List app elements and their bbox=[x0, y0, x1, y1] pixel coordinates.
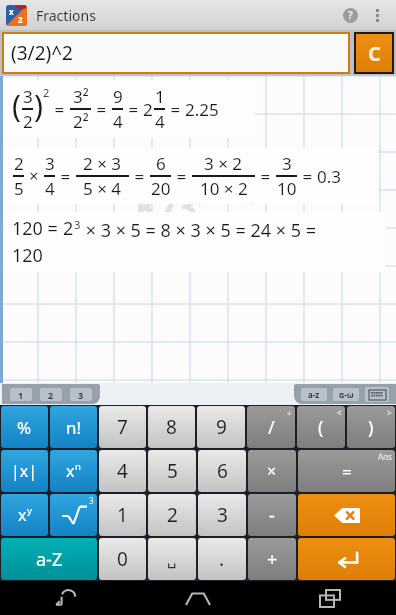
staticText: × bbox=[267, 460, 277, 482]
staticText: 2 bbox=[48, 389, 54, 401]
staticText: 4 bbox=[117, 458, 128, 484]
staticText: n! bbox=[66, 416, 82, 439]
button[interactable]: back bbox=[298, 494, 395, 536]
staticText: 0 bbox=[117, 546, 128, 572]
staticText: x bbox=[18, 504, 27, 526]
button[interactable]: 2 bbox=[4, 148, 378, 204]
button[interactable]: Hide keyboard bbox=[365, 387, 389, 402]
button[interactable]: ) bbox=[347, 406, 395, 448]
staticText: 3 bbox=[78, 389, 84, 401]
staticText: 3 bbox=[89, 495, 94, 506]
button[interactable]: 4 bbox=[99, 450, 146, 492]
button[interactable]: n! bbox=[50, 406, 97, 448]
staticText: 2 bbox=[143, 98, 153, 121]
staticText: 3² bbox=[73, 85, 89, 108]
staticText: 0.3 bbox=[317, 165, 342, 188]
button[interactable]: ( bbox=[297, 406, 345, 448]
button[interactable]: ( bbox=[4, 80, 255, 138]
staticText: 3 bbox=[45, 152, 55, 175]
button[interactable]: Recent apps bbox=[264, 581, 396, 615]
staticText: 3 bbox=[282, 152, 292, 175]
button[interactable]: |x| bbox=[1, 450, 48, 492]
staticText: |x| bbox=[11, 460, 38, 482]
button[interactable]: α-ω bbox=[333, 388, 359, 401]
staticText: a-Z bbox=[36, 547, 63, 572]
staticText: × 3 × 5 = 8 × 3 × 5 = 24 × 5 = bbox=[81, 218, 316, 243]
button[interactable]: 3 bbox=[70, 388, 92, 401]
staticText: 3 bbox=[23, 85, 33, 108]
staticText: % bbox=[17, 416, 32, 439]
button[interactable]: 2 bbox=[40, 388, 62, 401]
button[interactable]: 120 = bbox=[4, 212, 386, 272]
staticText: ␣ bbox=[167, 551, 177, 568]
staticText: 2.25 bbox=[185, 98, 219, 121]
staticText: 2 × 3 bbox=[83, 152, 122, 175]
button[interactable]: × bbox=[248, 450, 296, 492]
staticText: .com bbox=[197, 207, 233, 227]
button[interactable]: - bbox=[248, 494, 296, 536]
button[interactable]: 5 bbox=[148, 450, 196, 492]
staticText: = bbox=[124, 98, 143, 121]
staticText: = bbox=[342, 460, 352, 483]
staticText: 5 bbox=[14, 177, 24, 200]
button[interactable]: Home bbox=[132, 581, 264, 615]
staticText: = bbox=[256, 165, 275, 188]
staticText: ÷ bbox=[287, 407, 292, 418]
button[interactable]: a-z bbox=[301, 388, 327, 401]
button[interactable]: 3 bbox=[198, 494, 246, 536]
button[interactable]: enter bbox=[298, 538, 395, 580]
staticText: 2² bbox=[73, 110, 89, 133]
button[interactable]: Back bbox=[0, 581, 132, 615]
staticText: 5 bbox=[167, 458, 178, 484]
staticText: 6 bbox=[217, 458, 228, 484]
button[interactable]: a-Z bbox=[1, 538, 97, 580]
staticText: 4 bbox=[45, 177, 55, 200]
staticText: 9 bbox=[113, 85, 123, 108]
button[interactable]: 1 bbox=[99, 494, 146, 536]
staticText: = bbox=[56, 165, 75, 188]
staticText: 1 bbox=[18, 389, 24, 401]
button[interactable]: x bbox=[1, 494, 48, 536]
staticText: = bbox=[130, 165, 149, 188]
staticText: 2 bbox=[43, 85, 50, 100]
staticText: 4 bbox=[155, 110, 165, 133]
staticText: K73 bbox=[135, 184, 197, 230]
button[interactable]: + bbox=[248, 538, 296, 580]
button[interactable]: . bbox=[198, 538, 246, 580]
button[interactable]: 0 bbox=[99, 538, 146, 580]
button[interactable]: 8 bbox=[148, 406, 195, 448]
staticText: = bbox=[166, 98, 185, 121]
staticText: x bbox=[9, 6, 14, 17]
button[interactable]: sqrt bbox=[50, 494, 97, 536]
staticText: 4 bbox=[113, 110, 123, 133]
staticText: ? bbox=[348, 8, 353, 22]
button[interactable]: 1 bbox=[10, 388, 32, 401]
staticText: 9 bbox=[216, 414, 227, 440]
staticText: / bbox=[268, 415, 275, 440]
button[interactable]: / bbox=[247, 406, 295, 448]
button[interactable]: 6 bbox=[198, 450, 246, 492]
button[interactable]: = bbox=[298, 450, 395, 492]
staticText: ) bbox=[368, 415, 374, 440]
button[interactable]: 2 bbox=[148, 494, 196, 536]
staticText: 3 × 2 bbox=[204, 152, 243, 175]
button[interactable]: 7 bbox=[99, 406, 146, 448]
button[interactable]: x bbox=[50, 450, 97, 492]
staticText: < bbox=[337, 407, 342, 418]
button[interactable]: (3/2)^2 bbox=[4, 34, 348, 72]
staticText: 2 bbox=[167, 502, 178, 528]
button[interactable]: ␣ bbox=[148, 538, 196, 580]
button[interactable]: More options bbox=[364, 2, 390, 28]
staticText: 3 bbox=[217, 502, 228, 528]
staticText: = bbox=[50, 98, 69, 121]
staticText: α-ω bbox=[339, 389, 354, 400]
button[interactable]: C bbox=[356, 34, 392, 72]
staticText: 120 = bbox=[12, 216, 63, 241]
staticText: = bbox=[92, 98, 111, 121]
staticText: 6 bbox=[156, 152, 166, 175]
staticText: 1 bbox=[117, 502, 128, 528]
button[interactable]: % bbox=[1, 406, 48, 448]
button[interactable]: 9 bbox=[197, 406, 245, 448]
button[interactable]: Help bbox=[336, 1, 364, 29]
staticText: 1 bbox=[155, 85, 165, 108]
